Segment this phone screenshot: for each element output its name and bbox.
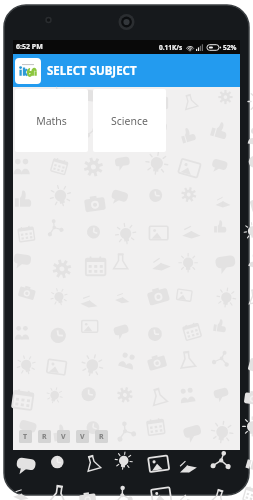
button[interactable]: Maths	[15, 89, 88, 152]
button[interactable]: iken home	[15, 58, 41, 84]
staticText: 6:52 PM	[16, 42, 43, 52]
button[interactable]: Science	[93, 89, 166, 152]
staticText: SELECT SUBJECT	[47, 63, 137, 79]
button[interactable]: R	[38, 430, 51, 443]
staticText: Science	[111, 114, 148, 128]
staticText: 0.11K/s	[159, 43, 183, 52]
staticText: Maths	[36, 114, 67, 128]
staticText: R	[99, 432, 104, 442]
staticText: R	[42, 432, 47, 442]
button[interactable]: V	[57, 430, 70, 443]
staticText: 52%	[223, 43, 237, 52]
button[interactable]: R	[95, 430, 108, 443]
button[interactable]: T	[19, 430, 32, 443]
button[interactable]: V	[76, 430, 89, 443]
staticText: V	[61, 432, 66, 442]
staticText: T	[23, 432, 28, 442]
staticText: V	[80, 432, 85, 442]
